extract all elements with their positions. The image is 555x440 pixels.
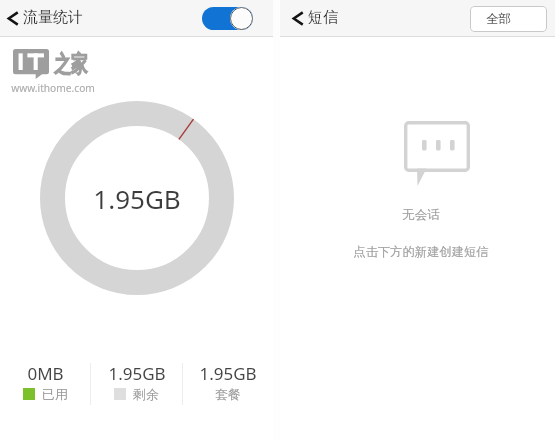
staticText: 0MB (27, 362, 64, 385)
button[interactable]: Back (289, 7, 307, 30)
button[interactable]: 1.95GB (183, 362, 273, 402)
staticText: 已用 (42, 386, 68, 402)
button[interactable]: 0MB (0, 362, 91, 402)
staticText: 短信 (308, 8, 338, 27)
staticText: 1.95GB (93, 181, 181, 216)
staticText: 无会话 (402, 207, 440, 223)
staticText: 1.95GB (108, 362, 166, 385)
button[interactable]: Back (4, 7, 22, 30)
staticText: 之家 (54, 50, 88, 79)
staticText: 全部 (486, 11, 511, 27)
staticText: 套餐 (215, 386, 241, 402)
staticText: 流量统计 (23, 8, 83, 27)
staticText: www.ithome.com (11, 81, 95, 95)
button[interactable]: 全部 (470, 6, 547, 32)
staticText: 1.95GB (199, 362, 257, 385)
staticText: 点击下方的新建创建短信 (353, 244, 489, 259)
button[interactable]: 1.95GB (91, 362, 182, 402)
button[interactable]: Data toggle (202, 7, 253, 30)
staticText: 剩余 (133, 386, 159, 402)
